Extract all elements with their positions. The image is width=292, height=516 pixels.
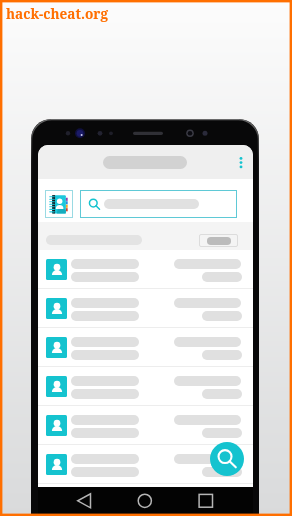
- button[interactable]: [38, 445, 253, 484]
- button[interactable]: [38, 328, 253, 367]
- button[interactable]: [38, 367, 253, 406]
- staticText: hack-cheat.org: [6, 4, 108, 23]
- button[interactable]: [80, 190, 237, 218]
- button[interactable]: [199, 234, 238, 247]
- button[interactable]: Contacts: [45, 190, 73, 218]
- button[interactable]: [38, 289, 253, 328]
- button[interactable]: [38, 406, 253, 445]
- button[interactable]: Search: [210, 442, 244, 476]
- button[interactable]: [38, 250, 253, 289]
- button[interactable]: More options: [231, 145, 253, 179]
